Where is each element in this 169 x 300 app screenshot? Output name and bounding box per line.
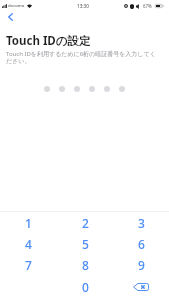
staticText: docomo	[8, 3, 25, 9]
staticText: 7	[25, 257, 32, 273]
button[interactable]: 9	[113, 254, 169, 275]
staticText: 2	[82, 215, 89, 231]
button[interactable]: 6	[113, 233, 169, 254]
button[interactable]: 4	[0, 233, 57, 254]
staticText: 1	[25, 215, 32, 231]
staticText: 13:30	[77, 3, 89, 9]
button[interactable]: 3	[113, 212, 169, 233]
button[interactable]: Back	[5, 11, 16, 22]
staticText: 5	[82, 236, 89, 252]
staticText: 4	[25, 236, 32, 252]
button[interactable]: Delete	[113, 275, 169, 299]
staticText: 0	[82, 279, 89, 295]
staticText: 8	[82, 257, 89, 273]
button[interactable]: 2	[57, 212, 113, 233]
button[interactable]: 7	[0, 254, 57, 275]
button[interactable]: 0	[57, 275, 113, 299]
button[interactable]: 5	[57, 233, 113, 254]
staticText: Touch IDの設定	[6, 33, 91, 49]
button[interactable]: 1	[0, 212, 57, 233]
staticText: 67%	[143, 3, 152, 9]
staticText: 3	[138, 215, 145, 231]
staticText: Touch IDを利用するために6桁の暗証番号を入力してください。	[6, 50, 157, 65]
staticText: 9	[138, 257, 145, 273]
staticText: 6	[138, 236, 145, 252]
button[interactable]: 8	[57, 254, 113, 275]
